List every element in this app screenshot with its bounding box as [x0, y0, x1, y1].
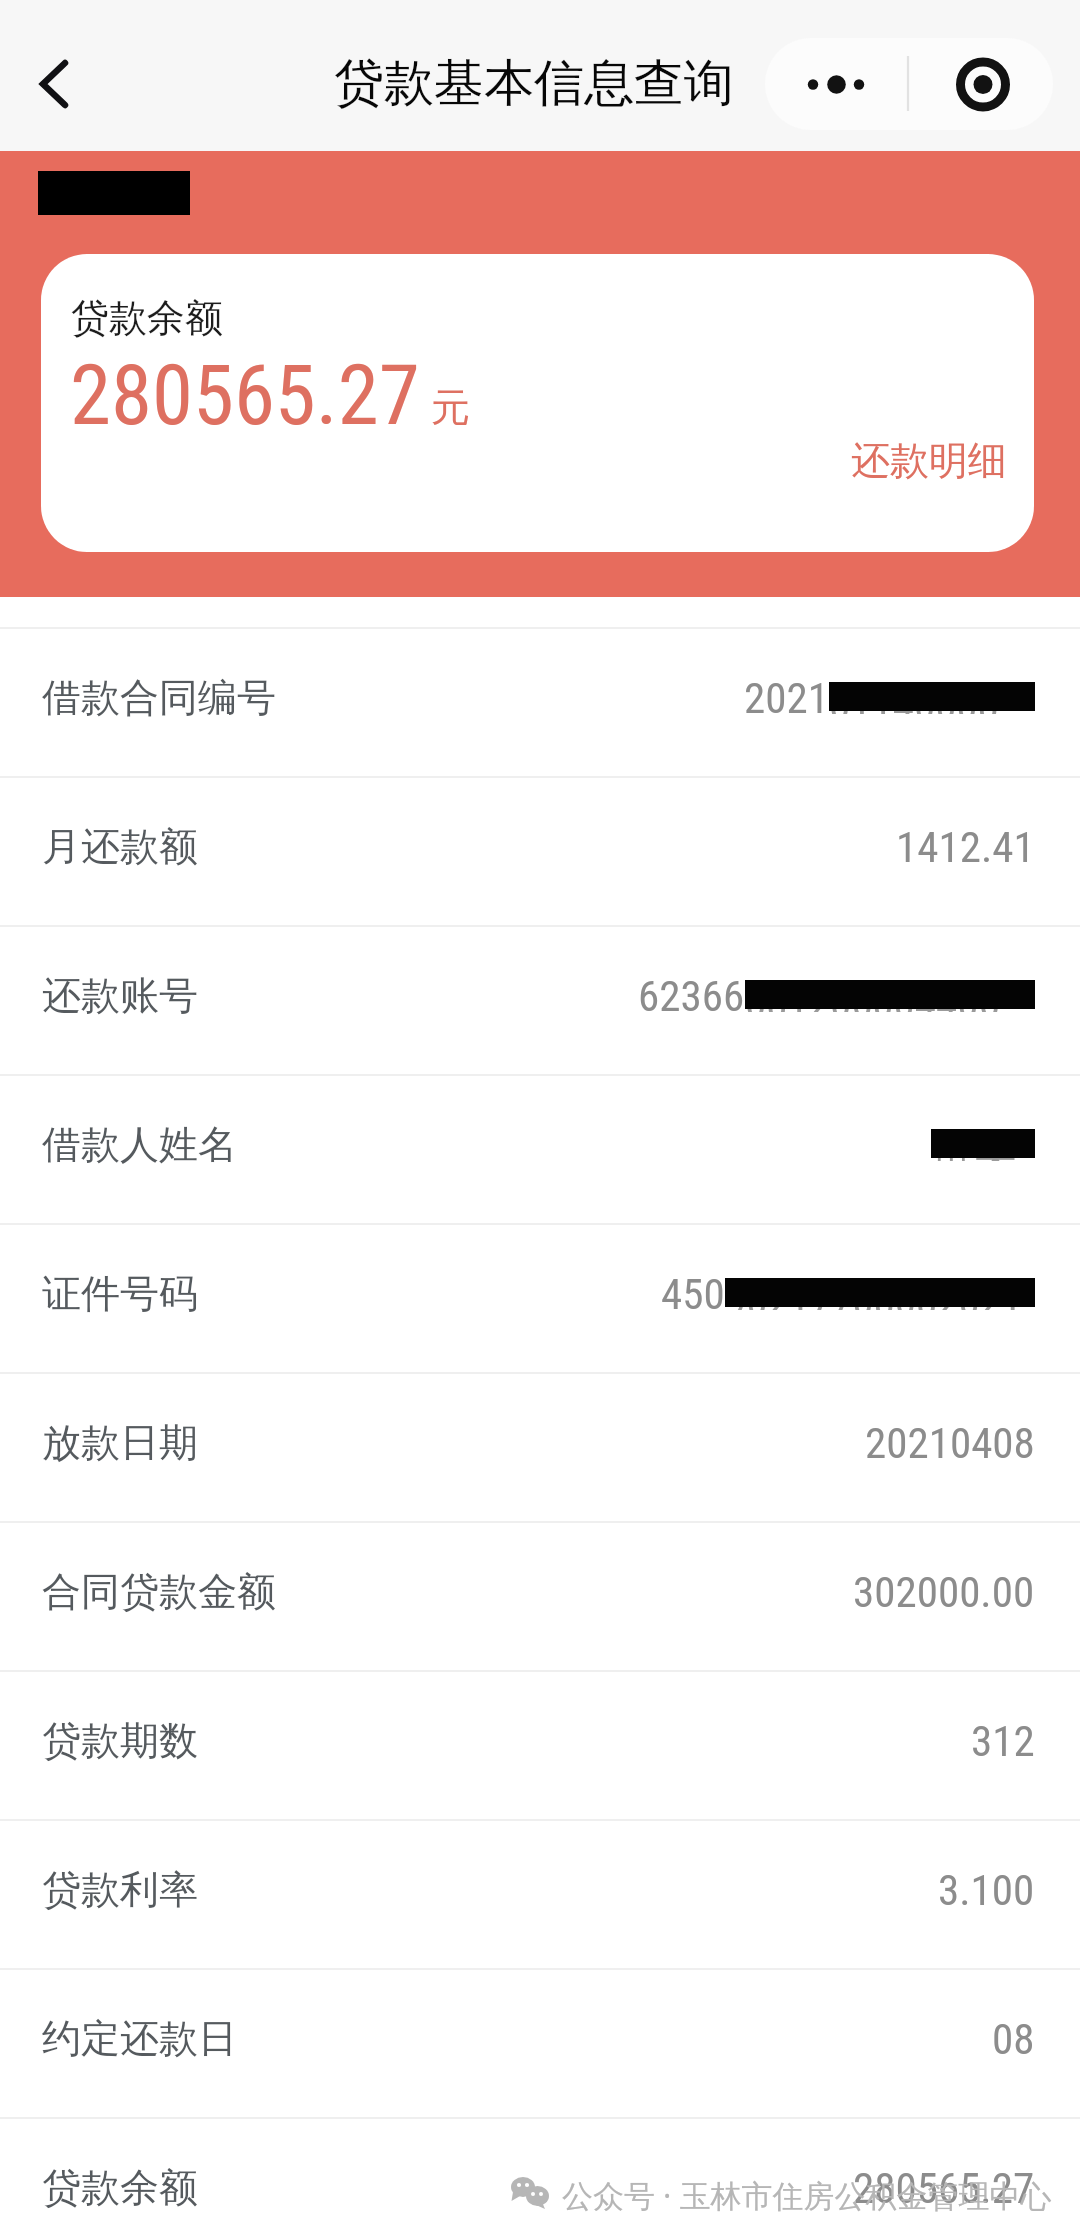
staticText: 08: [992, 2014, 1035, 2064]
button[interactable]: 合同贷款金额: [0, 1523, 1080, 1670]
staticText: 还款明细: [851, 436, 1007, 485]
staticText: 黄某某: [931, 1127, 1035, 1161]
staticText: 01140008: [829, 680, 999, 714]
staticText: 公众号 · 玉林市住房公积金管理中心: [562, 2174, 1052, 2216]
staticText: 280565.27: [70, 347, 420, 444]
staticText: 450: [661, 1269, 725, 1319]
button[interactable]: 贷款期数: [0, 1672, 1080, 1819]
button[interactable]: 还款账号: [0, 927, 1080, 1074]
staticText: 证件号码: [42, 1269, 198, 1318]
staticText: 月还款额: [42, 822, 198, 871]
staticText: 280565.27: [853, 2163, 1035, 2213]
staticText: 贷款期数: [42, 1716, 198, 1765]
staticText: 借款合同编号: [42, 673, 276, 722]
button[interactable]: 贷款利率: [0, 1821, 1080, 1968]
staticText: 贷款利率: [42, 1865, 198, 1914]
button[interactable]: Mini program menu: [765, 38, 1053, 130]
staticText: 2021: [744, 673, 829, 723]
staticText: 312: [971, 1716, 1035, 1766]
staticText: 还款账号: [42, 971, 198, 1020]
button[interactable]: 贷款余额: [0, 2119, 1080, 2236]
button[interactable]: 证件号码: [0, 1225, 1080, 1372]
button[interactable]: 还款明细: [835, 428, 1023, 493]
button[interactable]: 约定还款日: [0, 1970, 1080, 2117]
staticText: 081206004406: [745, 978, 1000, 1012]
staticText: 20210408: [865, 1418, 1035, 1468]
staticText: 合同贷款金额: [42, 1567, 276, 1616]
button[interactable]: 借款人姓名: [0, 1076, 1080, 1223]
button[interactable]: 放款日期: [0, 1374, 1080, 1521]
staticText: 贷款基本信息查询: [334, 52, 734, 115]
button[interactable]: 借款合同编号: [0, 629, 1080, 776]
staticText: 62366: [638, 971, 745, 1021]
staticText: 302000.00: [853, 1567, 1035, 1617]
button[interactable]: 月还款额: [0, 778, 1080, 925]
staticText: 9021770808202148: [725, 1276, 1035, 1310]
staticText: 借款人姓名: [42, 1120, 237, 1169]
staticText: 1412.41: [896, 822, 1035, 872]
staticText: 3.100: [938, 1865, 1035, 1915]
staticText: 贷款余额: [42, 2163, 198, 2212]
staticText: 元: [431, 383, 470, 432]
button[interactable]: Back: [9, 29, 99, 121]
staticText: 放款日期: [42, 1418, 198, 1467]
staticText: 约定还款日: [42, 2014, 237, 2063]
staticText: 贷款余额: [71, 294, 223, 342]
